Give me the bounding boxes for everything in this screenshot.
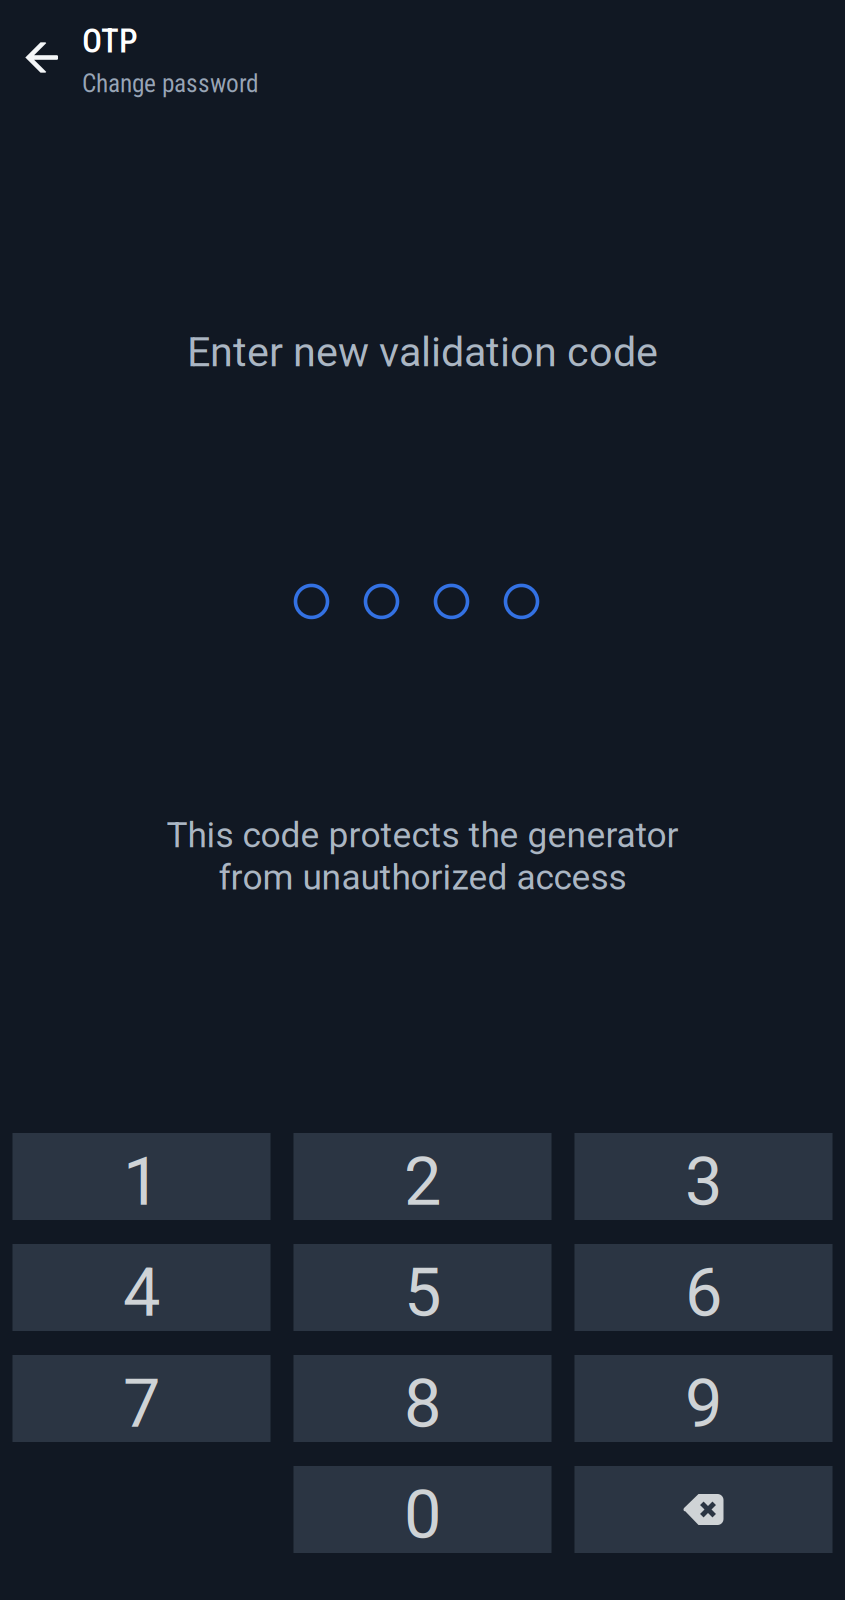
button[interactable]: 2 [293, 1133, 551, 1220]
staticText: 0 [404, 1476, 441, 1554]
button[interactable]: 6 [574, 1244, 832, 1331]
staticText: This code protects the generator [166, 814, 678, 856]
button[interactable]: 5 [293, 1244, 551, 1331]
staticText: Enter new validation code [187, 328, 658, 376]
staticText: 8 [404, 1365, 441, 1443]
staticText: OTP [82, 22, 138, 61]
staticText: 5 [404, 1254, 441, 1332]
button[interactable]: 7 [12, 1355, 270, 1442]
staticText: 7 [123, 1365, 160, 1443]
staticText: Change password [82, 69, 259, 98]
button[interactable]: 3 [574, 1133, 832, 1220]
button[interactable]: 9 [574, 1355, 832, 1442]
button[interactable]: 4 [12, 1244, 270, 1331]
button[interactable]: 1 [12, 1133, 270, 1220]
button[interactable]: 8 [293, 1355, 551, 1442]
staticText: 6 [685, 1254, 722, 1332]
staticText: 3 [685, 1143, 722, 1221]
staticText: 2 [404, 1143, 441, 1221]
button[interactable]: 0 [293, 1466, 551, 1553]
staticText: 4 [123, 1254, 160, 1332]
button[interactable]: Back [0, 0, 84, 104]
staticText: from unauthorized access [218, 857, 626, 898]
staticText: 1 [123, 1143, 160, 1221]
staticText: 9 [685, 1365, 722, 1443]
button[interactable]: Delete [574, 1466, 832, 1553]
